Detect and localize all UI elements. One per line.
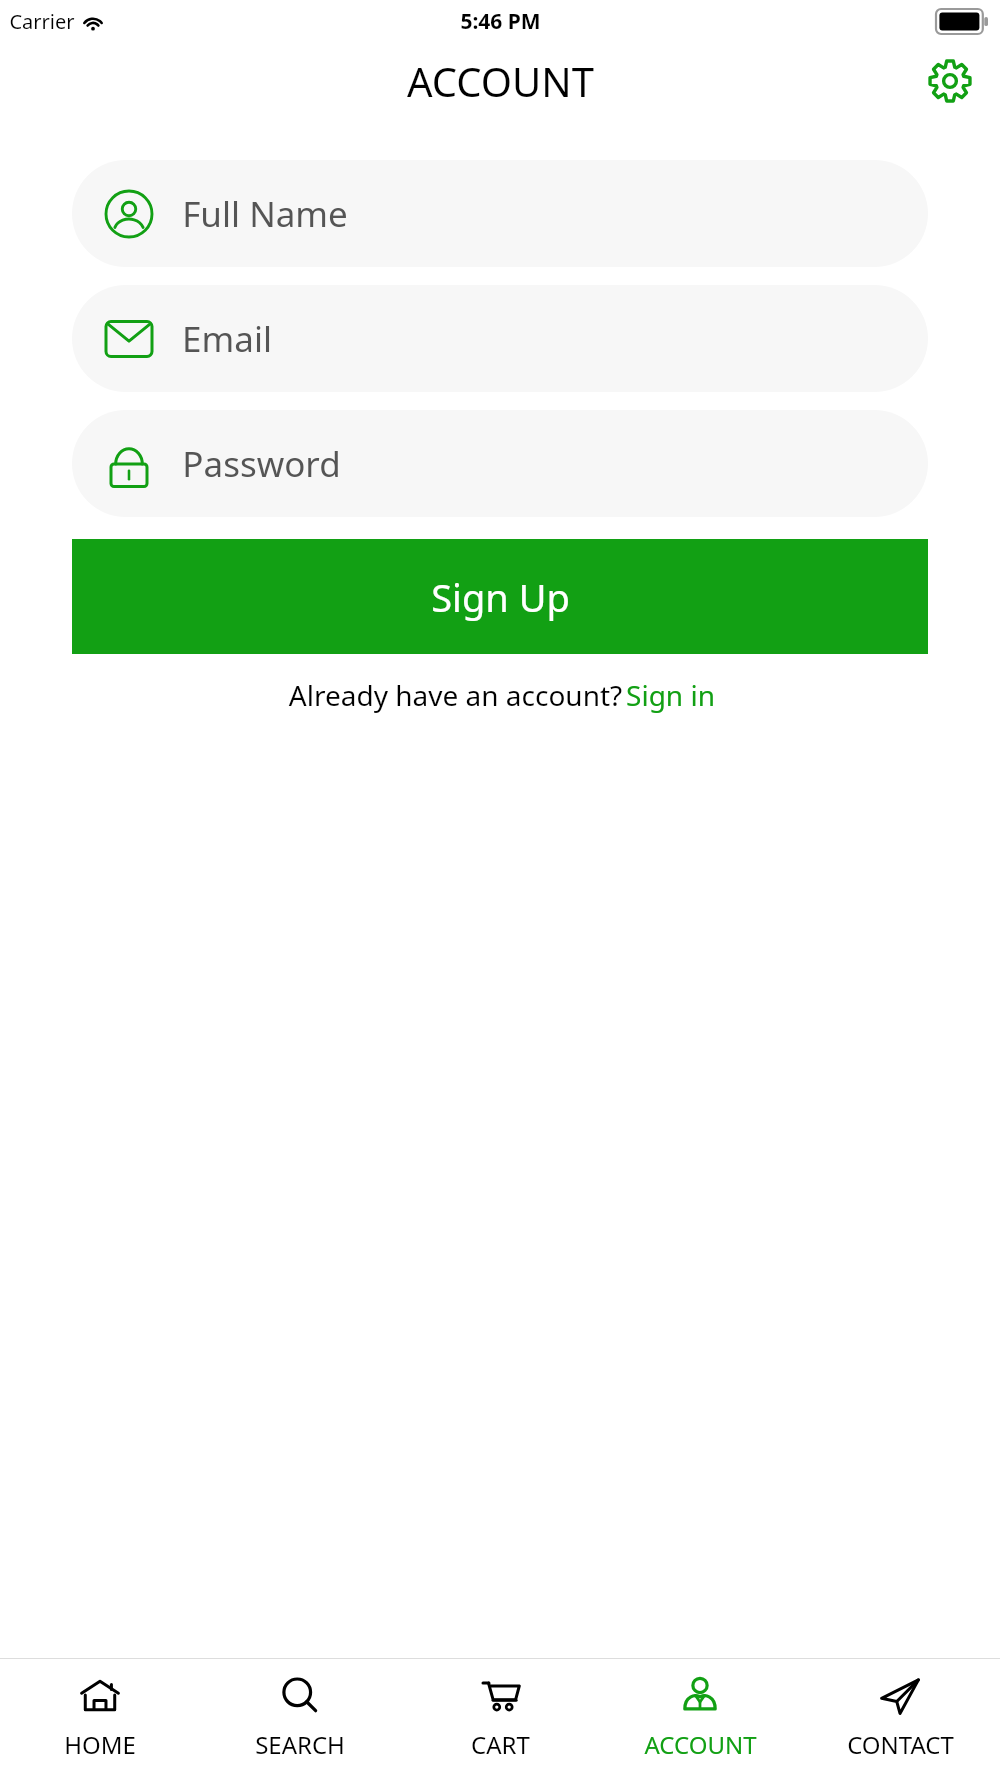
staticText: 5:46 PM — [460, 7, 541, 36]
button[interactable]: CART — [400, 1659, 600, 1761]
staticText: CART — [471, 1728, 530, 1761]
staticText: CONTACT — [847, 1728, 954, 1761]
staticText: Sign in — [626, 676, 715, 714]
button[interactable]: Email — [72, 285, 928, 392]
staticText: ACCOUNT — [644, 1728, 757, 1761]
staticText: HOME — [64, 1728, 136, 1761]
staticText: Sign Up — [431, 571, 570, 623]
button[interactable]: Settings — [920, 51, 980, 111]
button[interactable]: Sign in — [626, 676, 715, 714]
staticText: Already have an account? — [285, 676, 626, 714]
button[interactable]: ACCOUNT — [600, 1659, 800, 1761]
button[interactable]: SEARCH — [200, 1659, 400, 1761]
staticText: Full Name — [182, 190, 348, 238]
button[interactable]: Password — [72, 410, 928, 517]
staticText: Carrier — [9, 8, 75, 35]
staticText: ACCOUNT — [407, 54, 594, 108]
button[interactable]: HOME — [0, 1659, 200, 1761]
staticText: Email — [182, 315, 272, 363]
staticText: Password — [182, 440, 341, 488]
button[interactable]: CONTACT — [800, 1659, 1000, 1761]
staticText: SEARCH — [255, 1728, 345, 1761]
button[interactable]: Full Name — [72, 160, 928, 267]
button[interactable]: Sign Up — [72, 539, 928, 654]
